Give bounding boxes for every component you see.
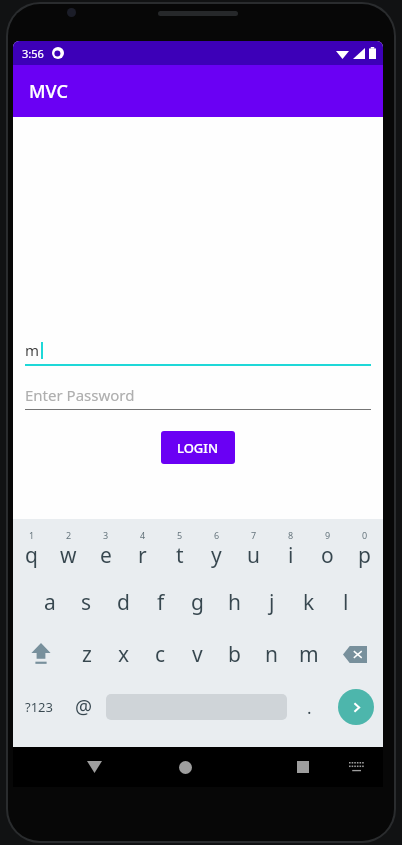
staticText: 2 xyxy=(66,529,72,541)
staticText: x xyxy=(118,640,130,669)
staticText: z xyxy=(82,640,92,669)
staticText: i xyxy=(288,541,294,570)
staticText: 3:56 xyxy=(22,46,44,61)
button[interactable]: 8 xyxy=(272,525,309,573)
button[interactable]: Enter Password xyxy=(25,384,371,410)
staticText: r xyxy=(138,541,147,570)
staticText: . xyxy=(307,696,312,719)
button[interactable]: Recent apps xyxy=(286,750,320,784)
button[interactable]: j xyxy=(253,579,290,625)
button[interactable]: Shift xyxy=(13,631,68,677)
staticText: Enter Password xyxy=(25,385,135,405)
staticText: c xyxy=(155,640,166,669)
button[interactable]: . xyxy=(290,683,328,731)
staticText: k xyxy=(303,588,315,617)
staticText: 1 xyxy=(29,529,35,541)
staticText: q xyxy=(25,541,38,570)
staticText: y xyxy=(211,541,222,570)
button[interactable]: 1 xyxy=(13,525,50,573)
staticText: w xyxy=(60,541,77,570)
button[interactable]: s xyxy=(68,579,105,625)
staticText: b xyxy=(228,640,241,669)
button[interactable]: Home xyxy=(168,750,202,784)
button[interactable]: 6 xyxy=(198,525,235,573)
button[interactable]: 2 xyxy=(50,525,87,573)
staticText: LOGIN xyxy=(177,439,219,457)
staticText: @ xyxy=(75,694,93,720)
button[interactable]: f xyxy=(142,579,179,625)
staticText: o xyxy=(321,541,334,570)
staticText: m xyxy=(25,340,40,360)
staticText: 8 xyxy=(288,529,294,541)
staticText: MVC xyxy=(29,79,68,104)
button[interactable]: z xyxy=(68,631,105,677)
staticText: a xyxy=(44,588,56,617)
staticText: ?123 xyxy=(25,698,53,716)
button[interactable]: Switch keyboard xyxy=(342,752,372,782)
button[interactable]: d xyxy=(105,579,142,625)
button[interactable]: @ xyxy=(65,683,103,731)
staticText: t xyxy=(176,541,184,570)
staticText: d xyxy=(117,588,130,617)
staticText: 7 xyxy=(251,529,257,541)
staticText: 0 xyxy=(362,529,368,541)
button[interactable]: m xyxy=(25,339,371,366)
button[interactable]: Back xyxy=(77,750,111,784)
button[interactable]: Backspace xyxy=(327,631,383,677)
staticText: g xyxy=(191,588,204,617)
staticText: 5 xyxy=(177,529,183,541)
button[interactable]: a xyxy=(31,579,68,625)
button[interactable]: 3 xyxy=(87,525,124,573)
staticText: 3 xyxy=(103,529,109,541)
staticText: v xyxy=(192,640,203,669)
staticText: j xyxy=(269,588,275,617)
button[interactable]: x xyxy=(105,631,142,677)
staticText: m xyxy=(299,640,319,669)
button[interactable]: 0 xyxy=(346,525,383,573)
staticText: l xyxy=(343,588,349,617)
button[interactable]: LOGIN xyxy=(161,431,235,464)
button[interactable]: Enter xyxy=(338,689,374,725)
button[interactable]: 4 xyxy=(124,525,161,573)
button[interactable]: v xyxy=(179,631,216,677)
button[interactable]: h xyxy=(216,579,253,625)
staticText: u xyxy=(247,541,260,570)
button[interactable]: b xyxy=(216,631,253,677)
button[interactable]: m xyxy=(290,631,327,677)
button[interactable]: l xyxy=(327,579,364,625)
staticText: e xyxy=(100,541,112,570)
button[interactable]: n xyxy=(253,631,290,677)
staticText: p xyxy=(358,541,371,570)
button[interactable]: ?123 xyxy=(13,683,65,731)
staticText: 9 xyxy=(325,529,331,541)
button[interactable]: 5 xyxy=(161,525,198,573)
button[interactable]: k xyxy=(290,579,327,625)
staticText: f xyxy=(157,588,165,617)
staticText: 6 xyxy=(214,529,220,541)
staticText: s xyxy=(81,588,92,617)
staticText: n xyxy=(265,640,278,669)
button[interactable]: g xyxy=(179,579,216,625)
button[interactable]: c xyxy=(142,631,179,677)
staticText: h xyxy=(228,588,241,617)
staticText: 4 xyxy=(140,529,146,541)
button[interactable]: 9 xyxy=(309,525,346,573)
button[interactable]: 7 xyxy=(235,525,272,573)
